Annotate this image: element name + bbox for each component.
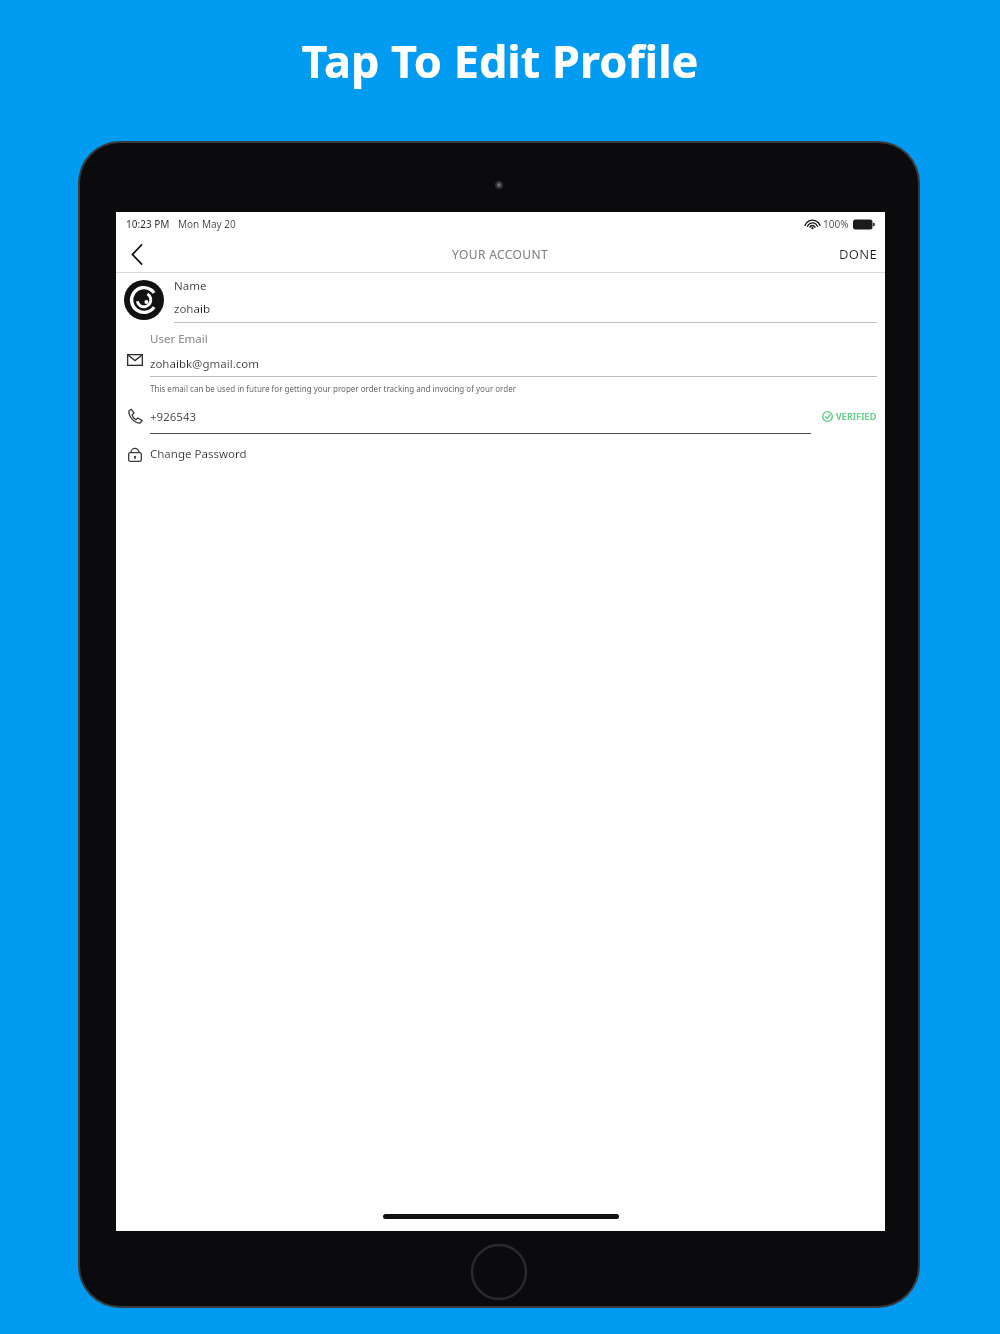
staticText: Tap To Edit Profile [0,30,1000,91]
staticText: +926543 [150,409,197,425]
staticText: YOUR ACCOUNT [452,246,549,262]
staticText: zohaibk@gmail.com [150,356,259,372]
button[interactable]: Name [116,273,885,327]
staticText: Change Password [150,446,247,462]
staticText: 10:23 PM [126,217,170,231]
staticText: VERIFIED [836,410,877,422]
staticText: 100% [823,217,849,231]
staticText: Mon May 20 [178,217,236,231]
button[interactable]: VERIFIED [822,410,877,422]
button[interactable]: Back [120,237,154,271]
staticText: Name [174,278,207,294]
staticText: User Email [150,331,208,347]
staticText: zohaib [174,301,210,317]
button[interactable]: User Email [116,327,885,399]
button[interactable]: Change Password [116,437,885,471]
staticText: This email can be used in future for get… [150,383,516,394]
button[interactable]: +926543 [116,399,885,437]
button[interactable]: DONE [831,239,885,269]
staticText: DONE [839,245,877,263]
